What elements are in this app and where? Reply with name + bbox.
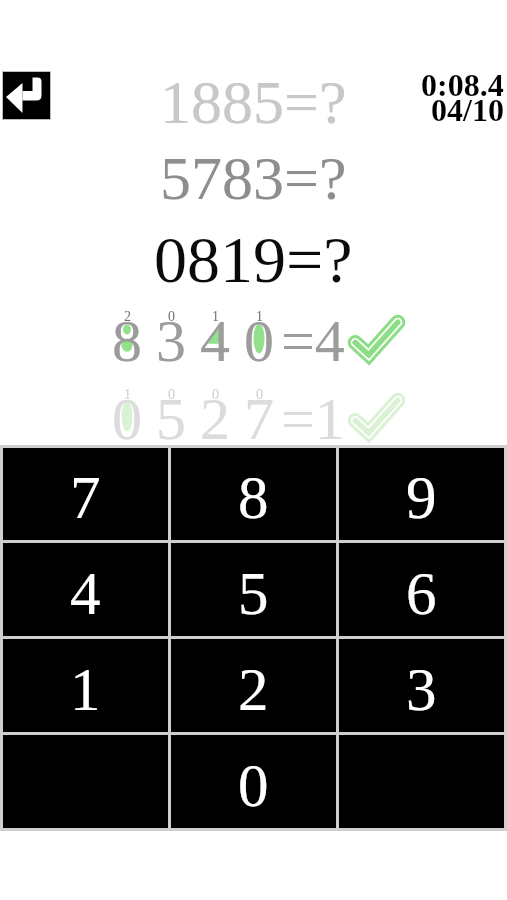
staticText: 0: [168, 387, 175, 403]
staticText: 8: [112, 308, 142, 374]
staticText: 5783=?: [160, 144, 347, 213]
staticText: 1: [256, 309, 263, 325]
staticText: 4: [70, 560, 101, 628]
staticText: 3: [406, 656, 437, 724]
staticText: 0: [112, 386, 142, 452]
staticText: 0: [244, 308, 274, 374]
staticText: 1: [212, 309, 219, 325]
staticText: 2: [238, 656, 269, 724]
staticText: 7: [70, 464, 101, 532]
button[interactable]: [3, 72, 50, 119]
button[interactable]: 1: [3, 639, 168, 732]
button[interactable]: 5: [171, 543, 336, 636]
button[interactable]: 7: [3, 448, 168, 540]
staticText: 2: [124, 309, 131, 325]
staticText: 4: [200, 308, 230, 374]
button[interactable]: 8: [171, 448, 336, 540]
staticText: 7: [244, 386, 274, 452]
staticText: =1: [281, 386, 345, 452]
staticText: 3: [156, 308, 186, 374]
staticText: 8: [238, 464, 269, 532]
staticText: 1885=?: [160, 68, 347, 137]
staticText: 0: [212, 387, 219, 403]
staticText: 1: [124, 387, 131, 403]
button[interactable]: 4: [3, 543, 168, 636]
staticText: 6: [406, 560, 437, 628]
staticText: 04/10: [431, 92, 504, 127]
staticText: 0819=?: [154, 223, 353, 296]
staticText: 5: [156, 386, 186, 452]
staticText: 0: [168, 309, 175, 325]
button[interactable]: 3: [339, 639, 504, 732]
staticText: 1: [70, 656, 101, 724]
staticText: 0: [238, 752, 269, 820]
staticText: 2: [200, 386, 230, 452]
staticText: =4: [281, 308, 345, 374]
staticText: 0: [256, 387, 263, 403]
button[interactable]: 6: [339, 543, 504, 636]
staticText: 0:08.4: [421, 67, 504, 102]
button[interactable]: 0: [171, 735, 336, 828]
staticText: 9: [406, 464, 437, 532]
button[interactable]: 9: [339, 448, 504, 540]
staticText: 5: [238, 560, 269, 628]
button[interactable]: 2: [171, 639, 336, 732]
